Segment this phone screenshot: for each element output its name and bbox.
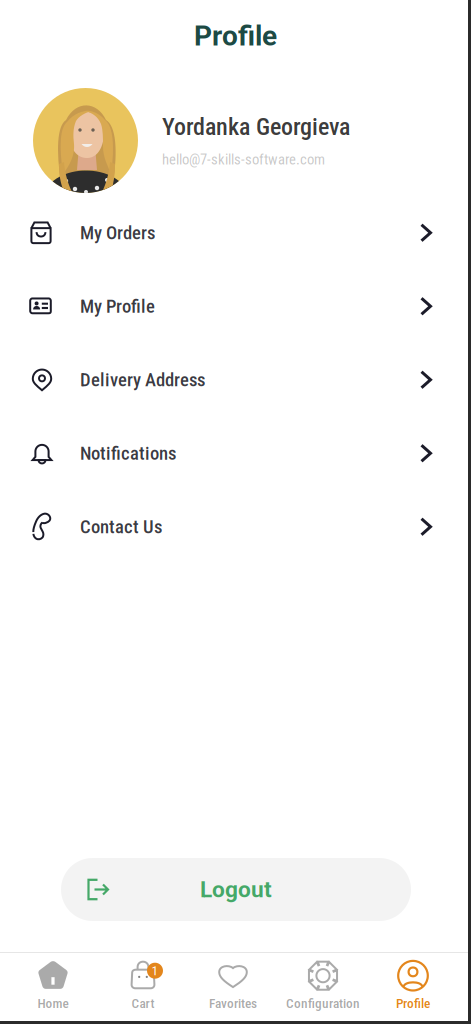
staticText: Delivery Address <box>80 369 205 391</box>
button[interactable]: 1 <box>98 953 188 1015</box>
button[interactable]: Notifications <box>0 416 471 490</box>
button[interactable]: Favorites <box>188 953 278 1015</box>
staticText: Profile <box>396 996 430 1011</box>
staticText: Favorites <box>209 996 257 1011</box>
staticText: Configuration <box>286 996 360 1011</box>
staticText: Home <box>37 996 68 1011</box>
button[interactable]: Configuration <box>278 953 368 1015</box>
button[interactable]: My Profile <box>0 269 471 343</box>
button[interactable]: Profile <box>368 953 458 1015</box>
button[interactable]: My Orders <box>0 196 471 269</box>
staticText: Cart <box>131 996 154 1011</box>
staticText: My Orders <box>80 222 155 244</box>
staticText: Notifications <box>80 442 176 464</box>
button[interactable]: Logout <box>61 858 411 921</box>
staticText: My Profile <box>80 295 155 317</box>
staticText: Contact Us <box>80 516 162 538</box>
button[interactable]: Home <box>8 953 98 1015</box>
staticText: Yordanka Georgieva <box>162 113 350 141</box>
button[interactable]: Contact Us <box>0 490 471 563</box>
staticText: Profile <box>194 20 277 52</box>
staticText: Logout <box>200 876 272 903</box>
button[interactable]: Delivery Address <box>0 343 471 416</box>
staticText: hello@7-skills-software.com <box>162 151 325 168</box>
staticText: 1 <box>151 963 158 978</box>
